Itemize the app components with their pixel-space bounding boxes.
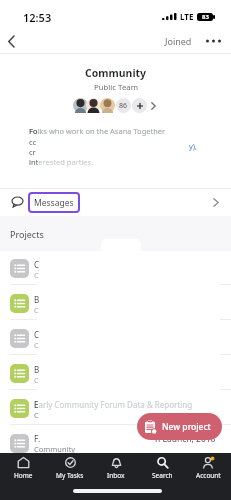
staticText: int (29, 157, 39, 167)
button[interactable]: B (0, 285, 231, 320)
staticText: Early Community Forum Data & Reporting (34, 399, 193, 410)
staticText: 83 (202, 13, 209, 21)
staticText: C (34, 259, 40, 270)
staticText: Account (196, 471, 221, 480)
button[interactable]: New project (137, 413, 222, 440)
staticText: C (34, 329, 40, 340)
staticText: Joined (165, 35, 192, 47)
staticText: 86 (119, 101, 128, 111)
staticText: C (34, 410, 39, 420)
button[interactable]: Messages (0, 188, 231, 216)
staticText: y), (189, 141, 198, 151)
staticText: Messages (34, 197, 74, 209)
staticText: Inbox (107, 471, 125, 480)
staticText: Projects (10, 228, 44, 240)
staticText: Fo (29, 126, 38, 136)
staticText: B (34, 294, 40, 305)
staticText: Folks who work on the Asana Together (29, 126, 166, 136)
staticText: LTE (180, 11, 194, 22)
staticText: Community (34, 444, 76, 454)
staticText: Community (85, 66, 147, 80)
staticText: interested parties. (29, 157, 94, 167)
staticText: F. (34, 433, 41, 445)
button[interactable]: Search (139, 457, 185, 487)
button[interactable]: Add members (132, 98, 147, 113)
button[interactable]: F. (0, 425, 231, 460)
staticText: My Tasks (56, 471, 84, 480)
staticText: New project (162, 421, 211, 433)
button[interactable]: Inbox (93, 457, 139, 487)
staticText: cc (29, 137, 37, 147)
button[interactable]: Back (1, 28, 21, 54)
staticText: B (34, 364, 40, 375)
staticText: C (34, 340, 39, 350)
button[interactable]: More options (201, 28, 226, 54)
staticText: cr (29, 147, 36, 157)
button[interactable]: Home (0, 457, 47, 487)
button[interactable]: C (0, 250, 231, 285)
staticText: Home (14, 471, 33, 480)
staticText: E (34, 399, 39, 410)
staticText: Search (152, 471, 173, 480)
button[interactable]: C (0, 320, 231, 355)
staticText: Public Team (94, 82, 138, 93)
staticText: 12:53 (23, 10, 52, 25)
button[interactable]: My Tasks (47, 457, 93, 487)
button[interactable]: Joined (162, 28, 195, 54)
button[interactable]: Account (185, 457, 231, 487)
staticText: C (34, 305, 39, 315)
button[interactable]: All members (149, 98, 157, 114)
button[interactable]: B (0, 355, 231, 390)
staticText: C (34, 375, 39, 385)
button[interactable]: Early Community Forum Data & Reporting (0, 390, 231, 425)
staticText: C (34, 270, 39, 280)
staticText: n Launch, 2018 (155, 433, 216, 445)
